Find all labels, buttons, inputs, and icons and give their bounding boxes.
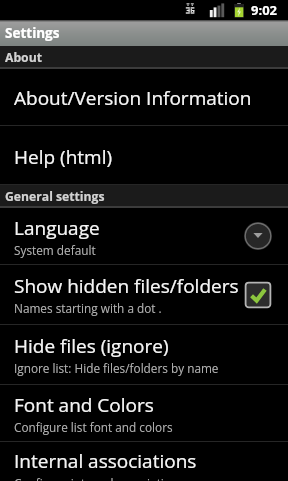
button[interactable]: About/Version Information xyxy=(0,69,288,126)
staticText: Font and Colors xyxy=(14,392,154,418)
staticText: Show hidden files/folders xyxy=(14,273,238,299)
button[interactable]: Select language xyxy=(244,222,272,250)
staticText: Names starting with a dot . xyxy=(14,300,162,316)
button[interactable]: Show hidden files/folders xyxy=(0,265,288,325)
button[interactable]: Show hidden files toggle xyxy=(244,281,272,309)
staticText: Configure list font and colors xyxy=(14,419,173,435)
staticText: Hide files (ignore) xyxy=(14,333,169,359)
button[interactable]: Language xyxy=(0,208,288,265)
staticText: System default xyxy=(14,242,96,258)
staticText: About xyxy=(5,49,42,66)
button[interactable]: Font and Colors xyxy=(0,385,288,442)
button[interactable]: Help (html) xyxy=(0,126,288,185)
staticText: Settings xyxy=(5,24,60,42)
button[interactable]: Hide files (ignore) xyxy=(0,325,288,385)
staticText: Help (html) xyxy=(14,144,113,170)
staticText: Ignore list: Hide files/folders by name xyxy=(14,360,219,376)
staticText: About/Version Information xyxy=(14,85,252,111)
staticText: 9:02 xyxy=(251,1,278,19)
staticText: Internal associations xyxy=(14,448,197,474)
staticText: Configure internal associations xyxy=(14,475,184,481)
button[interactable]: Internal associations xyxy=(0,442,288,481)
staticText: General settings xyxy=(5,188,105,205)
staticText: Language xyxy=(14,215,100,241)
